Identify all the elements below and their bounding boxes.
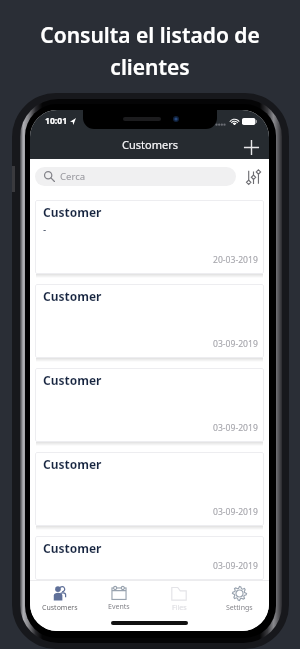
button[interactable]: Customer [35,452,264,526]
button[interactable]: Customer [35,536,264,580]
staticText: Events [108,602,130,612]
staticText: Customers [122,137,178,152]
button[interactable]: Customer [35,368,264,442]
button[interactable]: Events [89,584,149,612]
button[interactable]: Files [149,584,209,613]
staticText: Consulta el listado de clientes [0,21,300,81]
button[interactable]: Customer [35,284,264,358]
staticText: Customer [43,288,102,304]
staticText: Customers [42,603,78,613]
staticText: Settings [226,603,253,613]
staticText: 03-09-2019 [213,422,258,434]
staticText: Files [172,603,187,613]
staticText: Customer [43,540,102,556]
button[interactable]: Customers [30,584,89,613]
button[interactable]: Filter [246,170,261,184]
staticText: Customer [43,456,102,472]
staticText: Customer [43,204,102,220]
button[interactable]: Settings [209,584,269,613]
staticText: 03-09-2019 [213,338,258,350]
button[interactable]: Cerca [35,167,236,186]
staticText: 10:01 [45,115,68,127]
staticText: Customer [43,372,102,388]
staticText: 03-09-2019 [213,560,258,572]
staticText: 03-09-2019 [213,506,258,518]
staticText: 20-03-2019 [213,254,258,266]
button[interactable]: Add [241,137,262,158]
staticText: - [43,222,47,236]
staticText: Cerca [60,170,86,183]
button[interactable]: Customer [35,200,264,274]
